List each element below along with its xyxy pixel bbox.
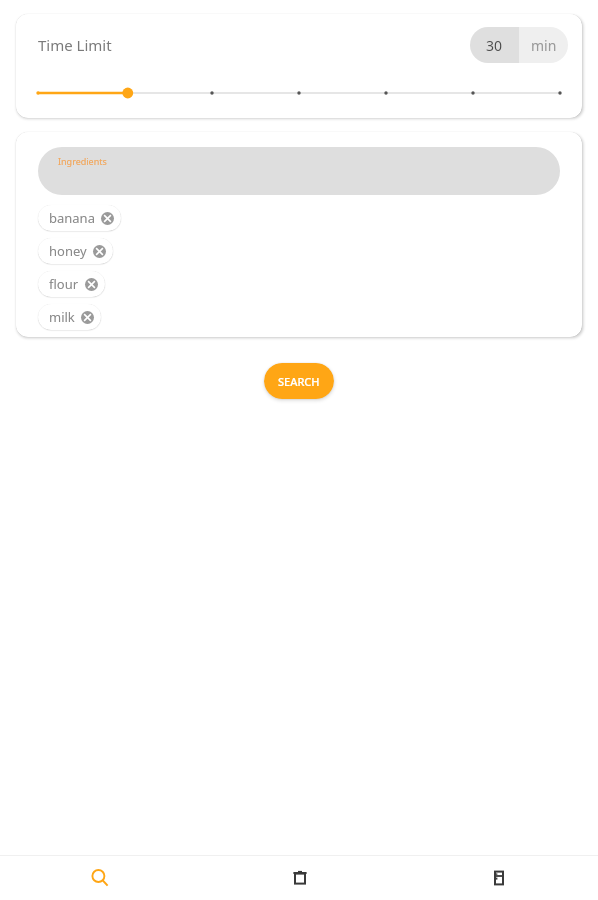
staticText: banana <box>49 209 95 227</box>
button[interactable] <box>38 76 560 110</box>
button[interactable]: Recipes <box>200 856 399 900</box>
button[interactable]: Ingredients <box>38 147 560 195</box>
button[interactable]: banana <box>49 209 114 227</box>
button[interactable]: Fridge <box>399 856 598 900</box>
staticText: 30 <box>486 36 503 55</box>
staticText: honey <box>49 242 87 260</box>
staticText: Ingredients <box>58 155 107 167</box>
button[interactable]: flour <box>49 275 98 293</box>
staticText: SEARCH <box>278 374 320 389</box>
button[interactable]: honey <box>49 242 106 260</box>
button[interactable]: Search <box>0 856 200 900</box>
staticText: milk <box>49 308 75 326</box>
staticText: Time Limit <box>38 35 112 55</box>
staticText: min <box>531 36 557 55</box>
staticText: flour <box>49 275 79 293</box>
button[interactable]: milk <box>49 308 94 326</box>
button[interactable]: 30 <box>470 27 568 63</box>
button[interactable]: SEARCH <box>264 363 334 399</box>
